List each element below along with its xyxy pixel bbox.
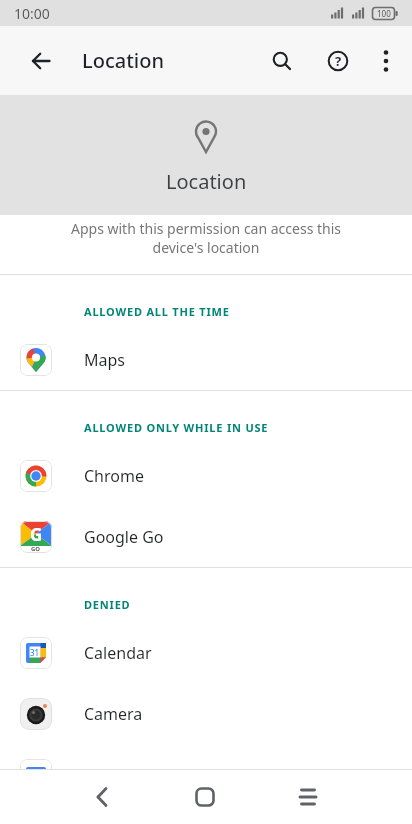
staticText: ALLOWED ALL THE TIME <box>84 304 230 319</box>
staticText: Maps <box>84 349 125 371</box>
button[interactable]: Camera <box>0 683 412 744</box>
staticText: ? <box>335 52 342 70</box>
staticText: Location <box>166 168 247 195</box>
button[interactable]: Chrome <box>0 445 412 506</box>
button[interactable] <box>362 37 410 85</box>
staticText: Apps with this permission can access thi… <box>0 219 412 257</box>
button[interactable]: G <box>0 506 412 567</box>
staticText: Google Go <box>84 526 164 548</box>
staticText: 10:00 <box>14 4 50 23</box>
button[interactable] <box>181 773 229 821</box>
button[interactable] <box>79 773 127 821</box>
button[interactable] <box>284 773 332 821</box>
button[interactable] <box>0 744 412 805</box>
staticText: Chrome <box>84 465 144 487</box>
button[interactable]: Maps <box>0 329 412 390</box>
button[interactable]: ? <box>314 37 362 85</box>
staticText: 31 <box>30 647 40 658</box>
staticText: Camera <box>84 703 143 725</box>
staticText: G <box>30 523 43 546</box>
button[interactable] <box>258 37 306 85</box>
staticText: ALLOWED ONLY WHILE IN USE <box>84 420 269 435</box>
staticText: DENIED <box>84 597 131 612</box>
button[interactable]: 31 <box>0 622 412 683</box>
staticText: 100 <box>377 8 391 19</box>
button[interactable] <box>17 37 65 85</box>
staticText: Calendar <box>84 642 152 664</box>
staticText: GO <box>31 545 41 553</box>
staticText: Location <box>82 47 164 74</box>
